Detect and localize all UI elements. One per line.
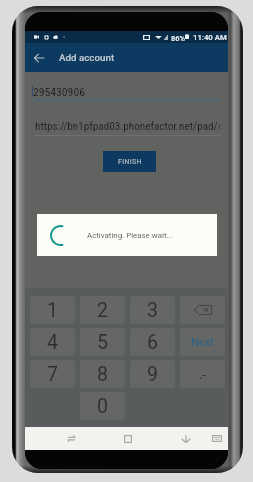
button[interactable]: Back xyxy=(175,427,197,450)
staticText: 9 xyxy=(147,363,158,386)
button[interactable]: Recent apps xyxy=(60,427,82,450)
staticText: 2 xyxy=(97,299,108,322)
staticText: FINISH xyxy=(118,158,142,166)
staticText: 1 xyxy=(47,299,58,322)
staticText: 3 xyxy=(147,299,158,322)
staticText: https://bn1pfpad03.phonefactor.net/pad/‹ xyxy=(35,120,221,133)
button[interactable]: 3 xyxy=(130,296,175,324)
staticText: 86% xyxy=(171,34,185,43)
button[interactable]: Next xyxy=(180,328,225,356)
button[interactable]: Backspace xyxy=(180,296,225,324)
button[interactable]: 5 xyxy=(80,328,125,356)
button[interactable]: 2 xyxy=(80,296,125,324)
staticText: 5 xyxy=(97,331,108,354)
other: Backspace xyxy=(194,305,212,315)
button[interactable]: FINISH xyxy=(103,151,156,172)
button[interactable]: 1 xyxy=(30,296,75,324)
staticText: 6 xyxy=(147,331,158,354)
button[interactable]: 4 xyxy=(30,328,75,356)
button[interactable]: 0 xyxy=(80,392,125,420)
button[interactable]: 7 xyxy=(30,360,75,388)
staticText: Next xyxy=(191,336,214,349)
button[interactable]: Home xyxy=(117,427,139,450)
staticText: 8 xyxy=(97,363,108,386)
button[interactable]: 9 xyxy=(130,360,175,388)
staticText: 11:40 AM xyxy=(193,33,227,42)
button[interactable]: Hide keyboard xyxy=(206,427,228,450)
staticText: Activating. Please wait... xyxy=(87,231,173,240)
staticText: 295430906 xyxy=(33,85,85,99)
staticText: Add account xyxy=(59,52,115,63)
button[interactable]: 6 xyxy=(130,328,175,356)
button[interactable]: 8 xyxy=(80,360,125,388)
staticText: 0 xyxy=(97,395,108,418)
button[interactable]: Navigate up xyxy=(25,44,53,72)
staticText: .- xyxy=(199,367,207,382)
staticText: 4 xyxy=(47,331,58,354)
staticText: 7 xyxy=(47,363,58,386)
